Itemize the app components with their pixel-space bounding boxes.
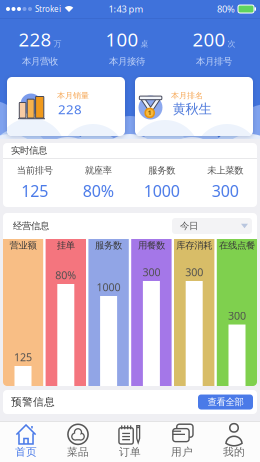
staticText: 万 xyxy=(53,39,61,49)
staticText: 订单 xyxy=(119,445,141,458)
staticText: 228 xyxy=(18,27,51,52)
staticText: 125 xyxy=(21,180,48,201)
button[interactable]: 我的 xyxy=(208,422,260,462)
staticText: 在线点餐 xyxy=(219,240,255,251)
staticText: 我的 xyxy=(223,445,245,458)
staticText: 300 xyxy=(142,265,160,279)
staticText: 1:43 pm xyxy=(108,3,143,15)
staticText: 菜品 xyxy=(67,445,89,458)
staticText: 预警信息 xyxy=(11,395,55,408)
staticText: 本月销量 xyxy=(57,91,89,100)
button[interactable]: 今日 xyxy=(172,218,252,234)
staticText: 200 xyxy=(192,27,225,52)
staticText: 营业额 xyxy=(9,240,36,251)
button[interactable]: 用户 xyxy=(156,422,208,462)
staticText: 228 xyxy=(58,100,82,118)
staticText: 当前排号 xyxy=(17,165,53,176)
staticText: 300 xyxy=(185,265,203,279)
staticText: 未上菜数 xyxy=(207,165,243,176)
staticText: 本月排号 xyxy=(196,56,232,67)
staticText: 首页 xyxy=(15,445,37,458)
button[interactable]: 订单 xyxy=(104,422,156,462)
staticText: 1000 xyxy=(144,180,180,201)
staticText: 用户 xyxy=(171,445,193,458)
staticText: 本月营收 xyxy=(22,56,58,67)
staticText: 经营信息 xyxy=(13,220,49,232)
staticText: 次 xyxy=(227,39,235,49)
staticText: 80% xyxy=(83,180,114,201)
staticText: 库存消耗 xyxy=(176,240,212,251)
staticText: 80% xyxy=(217,3,235,15)
staticText: 服务数 xyxy=(95,240,122,251)
staticText: 80% xyxy=(55,268,76,282)
button[interactable]: 首页 xyxy=(0,422,52,462)
staticText: 本月排名 xyxy=(171,91,203,100)
staticText: 今日 xyxy=(180,220,198,232)
staticText: 用餐数 xyxy=(138,240,165,251)
staticText: 桌 xyxy=(140,39,148,49)
staticText: 100 xyxy=(105,27,138,52)
staticText: 125 xyxy=(14,350,32,364)
staticText: 服务数 xyxy=(148,165,175,176)
staticText: Strokei xyxy=(35,4,61,14)
staticText: 本月接待 xyxy=(109,56,145,67)
staticText: 1000 xyxy=(97,280,121,294)
button[interactable]: 查看全部 xyxy=(198,394,253,409)
staticText: 黄秋生 xyxy=(172,101,211,117)
staticText: 300 xyxy=(228,308,246,323)
staticText: 查看全部 xyxy=(207,396,243,408)
button[interactable]: 菜品 xyxy=(52,422,104,462)
staticText: 1 xyxy=(148,108,152,117)
staticText: 300 xyxy=(212,180,239,201)
staticText: 挂单 xyxy=(57,240,75,251)
staticText: 就座率 xyxy=(85,165,112,176)
staticText: 实时信息 xyxy=(11,145,47,156)
